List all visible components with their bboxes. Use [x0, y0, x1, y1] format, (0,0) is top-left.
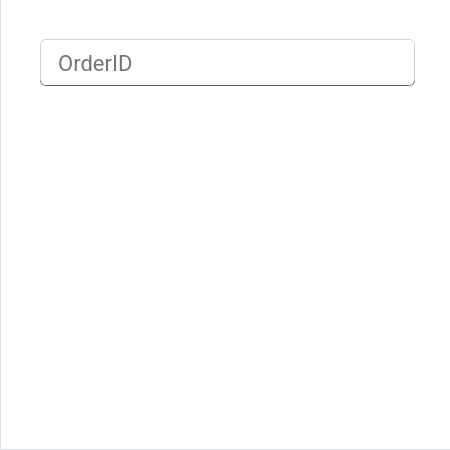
staticText: OrderID	[58, 51, 133, 77]
button[interactable]: OrderID	[40, 39, 415, 86]
